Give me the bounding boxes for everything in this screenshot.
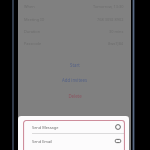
staticText: Send Message: [32, 125, 59, 130]
staticText: Add invitees: [62, 77, 87, 83]
staticText: When: [24, 4, 35, 9]
staticText: Duration: [24, 29, 41, 34]
button[interactable]: Send Message: [18, 120, 129, 134]
button[interactable]: Delete: [18, 90, 131, 102]
staticText: Meeting ID: [24, 17, 45, 22]
staticText: Passcode: [24, 41, 42, 46]
staticText: 8wx7J84: [108, 41, 124, 46]
staticText: Tomorrow, 13:30: [93, 4, 124, 9]
button[interactable]: Add invitees: [18, 74, 131, 86]
staticText: 768 3092 8902: [97, 17, 124, 22]
button[interactable]: Send Email: [18, 134, 129, 148]
staticText: Start: [70, 62, 80, 68]
staticText: Delete: [68, 93, 82, 99]
staticText: Send Email: [32, 139, 53, 144]
staticText: 30 mins: [109, 29, 124, 34]
